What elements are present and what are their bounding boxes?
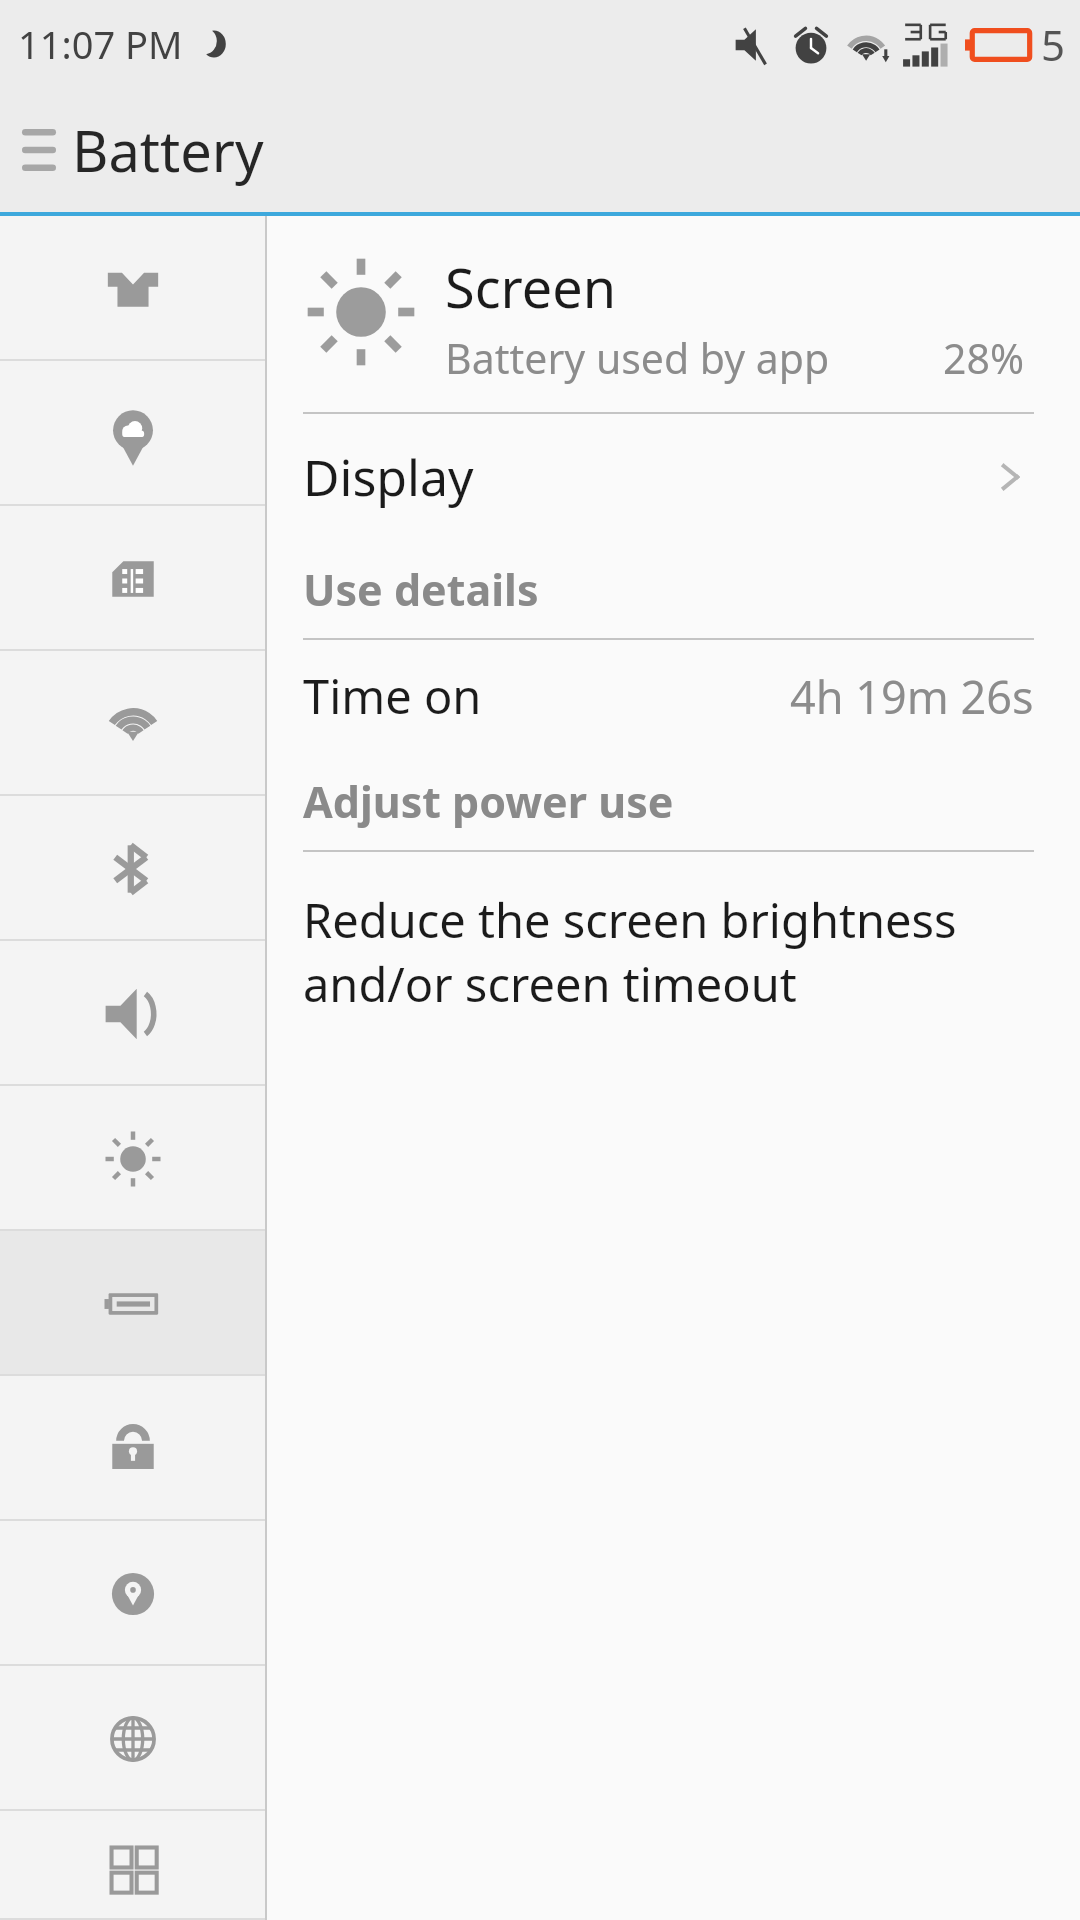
button[interactable]: Display — [267, 414, 1080, 540]
staticText: Screen — [445, 250, 617, 324]
button[interactable]: Themes — [0, 216, 265, 361]
button[interactable]: Brightness — [0, 1086, 265, 1231]
button[interactable]: Wi-Fi — [0, 651, 265, 796]
staticText: Reduce the screen brightness and/or scre… — [303, 888, 1010, 1016]
staticText: Use details — [303, 560, 539, 619]
staticText: 28% — [943, 330, 1024, 386]
button[interactable]: Bluetooth — [0, 796, 265, 941]
button[interactable]: Security — [0, 1376, 265, 1521]
staticText: Display — [303, 443, 474, 511]
staticText: Battery — [72, 112, 264, 188]
staticText: 11:07 PM — [18, 18, 183, 70]
staticText: Adjust power use — [303, 772, 674, 831]
button[interactable]: Open navigation menu — [0, 109, 72, 191]
staticText: Time on — [303, 664, 482, 728]
button[interactable]: Language — [0, 1666, 265, 1811]
staticText: 5 — [1041, 16, 1066, 73]
button[interactable]: Cloud — [0, 361, 265, 506]
button[interactable]: Apps — [0, 1811, 265, 1920]
button[interactable]: Battery — [0, 1231, 265, 1376]
staticText: 4h 19m 26s — [790, 666, 1034, 727]
button[interactable]: SIM cards — [0, 506, 265, 651]
staticText: Battery used by app — [445, 330, 830, 386]
button[interactable]: Sound — [0, 941, 265, 1086]
button[interactable]: Location — [0, 1521, 265, 1666]
